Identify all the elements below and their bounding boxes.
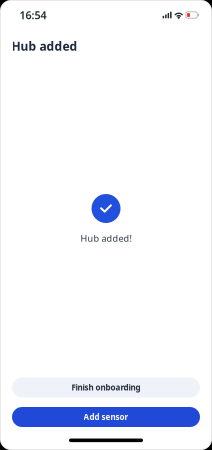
staticText: Add sensor [83,412,128,422]
staticText: 16:54 [19,8,46,22]
staticText: Hub added! [80,232,131,244]
staticText: Finish onboarding [71,382,140,393]
button[interactable]: Add sensor [12,407,200,427]
staticText: Hub added [11,38,77,54]
button[interactable]: Finish onboarding [12,377,200,397]
